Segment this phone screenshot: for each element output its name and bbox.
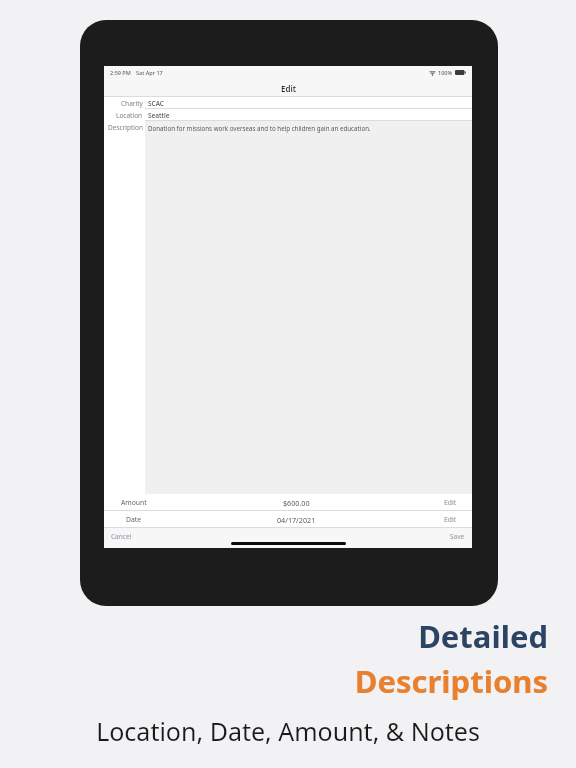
staticText: Charity bbox=[121, 99, 143, 108]
staticText: $600.00 bbox=[283, 498, 310, 508]
staticText: Edit bbox=[444, 515, 457, 524]
staticText: 2:59 PM bbox=[110, 69, 131, 76]
staticText: Descriptions bbox=[28, 660, 548, 702]
staticText: Location, Date, Amount, & Notes bbox=[28, 714, 548, 748]
staticText: Edit bbox=[281, 83, 296, 94]
staticText: Seattle bbox=[148, 111, 170, 120]
button[interactable]: Edit bbox=[428, 511, 472, 528]
staticText: Save bbox=[450, 532, 465, 541]
button[interactable]: Cancel bbox=[108, 530, 135, 543]
staticText: SCAC bbox=[148, 99, 164, 108]
staticText: Detailed bbox=[28, 615, 548, 657]
staticText: Sat Apr 17 bbox=[136, 69, 163, 76]
staticText: Cancel bbox=[111, 532, 132, 541]
button[interactable]: Description bbox=[104, 121, 472, 494]
staticText: Donation for missions work overseas and … bbox=[148, 124, 371, 132]
staticText: Date bbox=[126, 515, 142, 524]
staticText: 04/17/2021 bbox=[277, 515, 316, 525]
button[interactable]: Location bbox=[104, 109, 472, 121]
button[interactable]: Save bbox=[447, 530, 468, 543]
staticText: 100% bbox=[438, 69, 453, 76]
staticText: Amount bbox=[121, 498, 147, 507]
staticText: Description bbox=[108, 123, 143, 132]
staticText: Location bbox=[116, 111, 143, 120]
button[interactable]: Charity bbox=[104, 97, 472, 109]
staticText: Edit bbox=[444, 498, 457, 507]
button[interactable]: Edit bbox=[428, 494, 472, 511]
